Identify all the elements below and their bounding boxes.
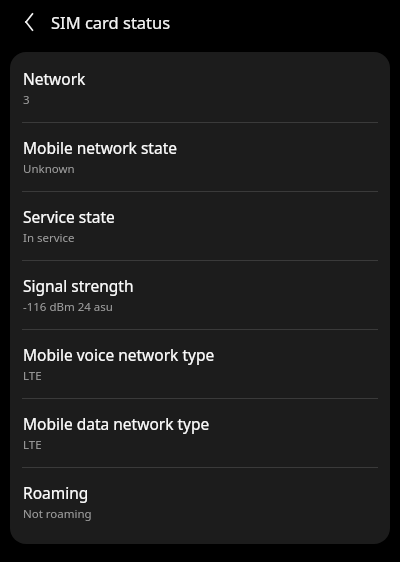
staticText: SIM card status — [51, 11, 171, 33]
staticText: Roaming — [23, 482, 89, 503]
button[interactable]: Mobile voice network type — [10, 330, 390, 398]
button[interactable]: Mobile data network type — [10, 399, 390, 467]
staticText: Service state — [23, 206, 115, 227]
staticText: Unknown — [23, 161, 75, 177]
staticText: Mobile network state — [23, 137, 177, 158]
staticText: Not roaming — [23, 506, 92, 522]
staticText: LTE — [23, 368, 42, 384]
staticText: -116 dBm 24 asu — [23, 299, 113, 315]
staticText: LTE — [23, 437, 42, 453]
button[interactable]: Signal strength — [10, 261, 390, 329]
button[interactable]: Roaming — [10, 468, 390, 544]
staticText: Signal strength — [23, 275, 134, 296]
staticText: 3 — [23, 92, 30, 108]
staticText: In service — [23, 230, 75, 246]
staticText: Mobile voice network type — [23, 344, 215, 365]
button[interactable]: Service state — [10, 192, 390, 260]
button[interactable]: Back — [14, 6, 46, 38]
button[interactable]: Network — [10, 52, 390, 122]
staticText: Network — [23, 68, 86, 89]
button[interactable]: Mobile network state — [10, 123, 390, 191]
staticText: Mobile data network type — [23, 413, 210, 434]
